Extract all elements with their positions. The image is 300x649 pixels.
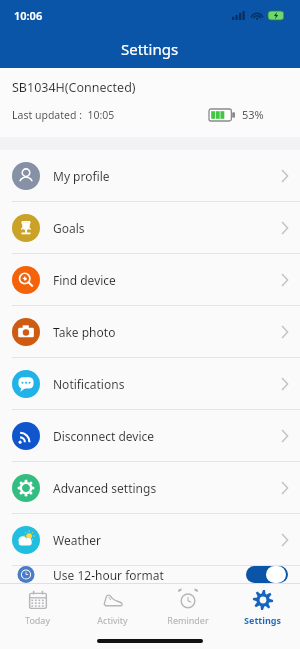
staticText: Find device bbox=[53, 272, 116, 288]
button[interactable]: Today bbox=[0, 584, 75, 633]
staticText: 10:06 bbox=[14, 8, 43, 23]
button[interactable]: Advanced settings bbox=[0, 462, 300, 513]
button[interactable]: Take photo bbox=[0, 306, 300, 357]
button[interactable]: My profile bbox=[0, 150, 300, 201]
staticText: Last updated : 10:05 bbox=[12, 108, 115, 122]
staticText: My profile bbox=[53, 168, 110, 184]
button[interactable]: Settings bbox=[225, 584, 300, 633]
staticText: Goals bbox=[53, 220, 85, 236]
staticText: Activity bbox=[97, 614, 128, 626]
button[interactable]: Notifications bbox=[0, 358, 300, 409]
button[interactable]: Weather bbox=[0, 514, 300, 565]
staticText: Settings bbox=[244, 614, 281, 626]
staticText: Today bbox=[25, 614, 50, 626]
button[interactable]: Goals bbox=[0, 202, 300, 253]
staticText: Reminder bbox=[167, 614, 209, 626]
staticText: Disconnect device bbox=[53, 428, 155, 444]
staticText: Notifications bbox=[53, 376, 125, 392]
staticText: Take photo bbox=[53, 324, 116, 340]
staticText: 53% bbox=[242, 107, 264, 122]
button[interactable]: Disconnect device bbox=[0, 410, 300, 461]
staticText: Weather bbox=[53, 532, 101, 548]
other: Use 12-hour format toggle bbox=[246, 566, 288, 583]
button[interactable]: Find device bbox=[0, 254, 300, 305]
staticText: Settings bbox=[121, 39, 179, 59]
staticText: Use 12-hour format bbox=[53, 567, 164, 583]
button[interactable]: Activity bbox=[75, 584, 150, 633]
button[interactable]: Use 12-hour format bbox=[0, 566, 300, 583]
staticText: Advanced settings bbox=[53, 480, 157, 496]
staticText: SB1034H(Connected) bbox=[12, 79, 136, 96]
button[interactable]: Reminder bbox=[150, 584, 225, 633]
